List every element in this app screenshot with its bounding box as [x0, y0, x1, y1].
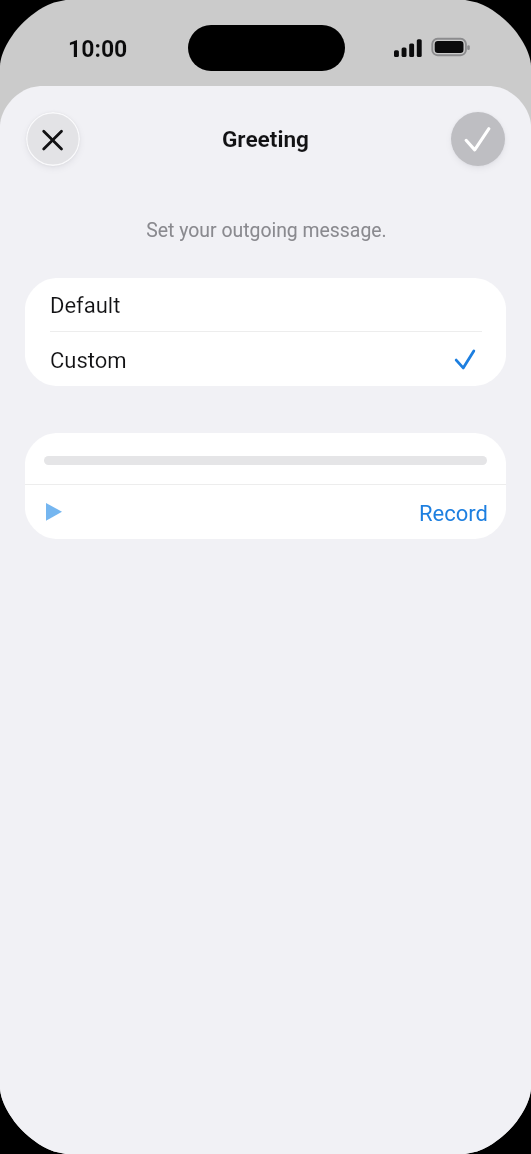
- button[interactable]: Close: [26, 112, 80, 166]
- staticText: Set your outgoing message.: [1, 219, 531, 242]
- staticText: Record: [419, 501, 488, 527]
- staticText: 10:00: [68, 36, 128, 63]
- button[interactable]: Record: [415, 486, 491, 539]
- button[interactable]: Done: [451, 112, 505, 166]
- button[interactable]: Custom: [25, 333, 506, 386]
- staticText: Custom: [50, 348, 127, 374]
- staticText: Greeting: [0, 126, 531, 152]
- button[interactable]: Default: [25, 278, 506, 332]
- staticText: Default: [50, 293, 121, 319]
- button[interactable]: Play: [46, 503, 63, 521]
